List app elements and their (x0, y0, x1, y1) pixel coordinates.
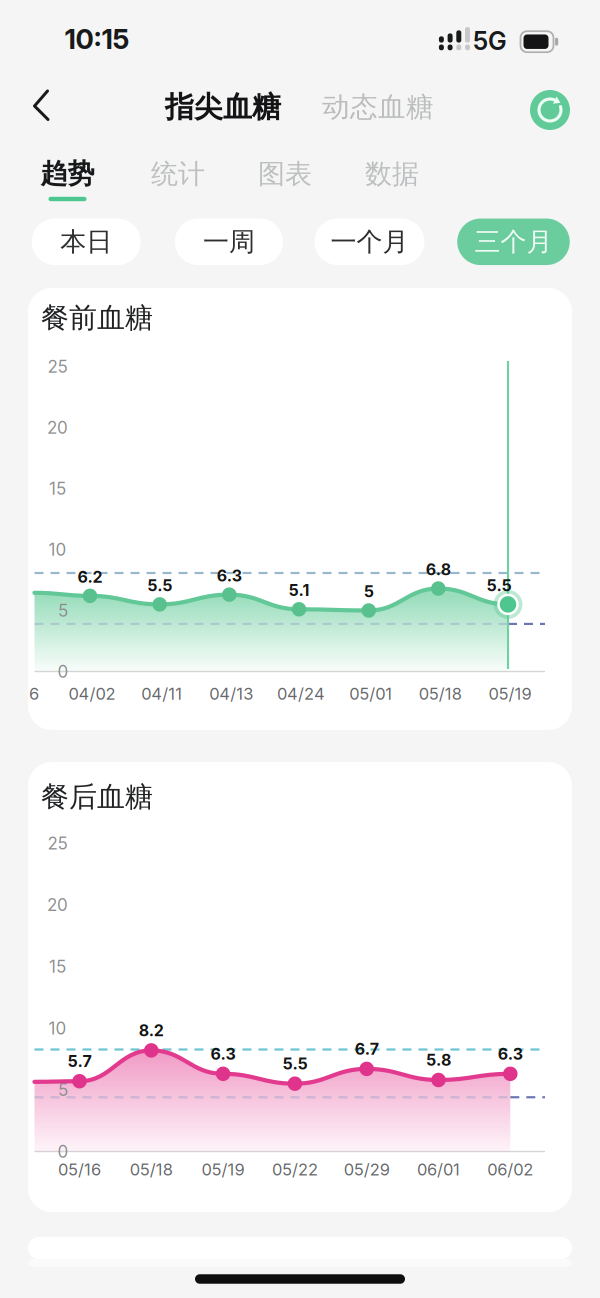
staticText: 0 (57, 661, 68, 682)
button[interactable]: 本日 (32, 219, 141, 265)
staticText: 本日 (60, 225, 112, 258)
staticText: 10:15 (64, 22, 129, 56)
staticText: 15 (49, 478, 66, 499)
button[interactable]: 趋势 (40, 157, 94, 201)
staticText: 餐前血糖 (41, 300, 153, 336)
staticText: 5 (58, 600, 68, 621)
staticText: 25 (47, 356, 67, 377)
staticText: 0 (57, 1141, 68, 1162)
staticText: 数据 (365, 157, 419, 191)
staticText: 25 (47, 833, 67, 854)
staticText: 05/19 (202, 1159, 245, 1179)
staticText: 餐后血糖 (41, 779, 153, 815)
staticText: 一周 (203, 225, 255, 258)
staticText: 06/02 (487, 1159, 533, 1179)
staticText: 5.5 (147, 576, 172, 595)
staticText: 04/11 (141, 684, 182, 704)
staticText: 05/29 (344, 1159, 390, 1179)
staticText: 6 (29, 684, 39, 704)
staticText: 05/18 (419, 684, 462, 704)
button[interactable]: 图表 (249, 152, 321, 196)
staticText: 05/16 (58, 1159, 101, 1179)
staticText: 三个月 (474, 225, 552, 258)
staticText: 06/01 (417, 1159, 460, 1179)
staticText: 图表 (258, 157, 312, 191)
staticText: 6.2 (77, 567, 102, 587)
button[interactable]: Back (19, 83, 63, 127)
staticText: 8.2 (139, 1021, 164, 1040)
staticText: 5.7 (67, 1051, 91, 1071)
staticText: 5 (364, 582, 374, 601)
staticText: 10 (48, 1018, 66, 1038)
staticText: 动态血糖 (322, 90, 434, 124)
staticText: 6.7 (355, 1039, 379, 1059)
button[interactable]: Refresh (530, 90, 570, 130)
staticText: 6.8 (426, 560, 451, 579)
staticText: 04/24 (277, 684, 325, 704)
button[interactable]: 一个月 (314, 219, 424, 265)
staticText: 05/01 (349, 684, 392, 704)
staticText: 05/22 (272, 1159, 318, 1179)
button[interactable]: 一周 (175, 219, 283, 265)
staticText: 5.5 (486, 576, 511, 595)
staticText: 5 (58, 1080, 68, 1100)
staticText: 6.3 (211, 1044, 236, 1063)
button[interactable]: 数据 (356, 152, 428, 196)
staticText: 15 (49, 956, 66, 977)
staticText: 一个月 (330, 225, 408, 258)
staticText: 20 (47, 895, 68, 915)
staticText: 5G (473, 26, 507, 56)
staticText: 5.5 (282, 1054, 307, 1073)
staticText: 6.3 (217, 566, 242, 585)
staticText: 6.3 (498, 1044, 523, 1063)
staticText: 10 (48, 539, 66, 560)
staticText: 05/18 (130, 1159, 173, 1179)
button[interactable]: 三个月 (457, 219, 570, 265)
staticText: 04/02 (68, 684, 115, 704)
staticText: 统计 (151, 157, 205, 191)
staticText: 20 (47, 417, 68, 438)
staticText: 趋势 (40, 157, 94, 191)
staticText: 04/13 (209, 684, 253, 704)
staticText: 05/19 (488, 684, 531, 704)
staticText: 5.8 (426, 1050, 451, 1070)
button[interactable]: 动态血糖 (316, 85, 440, 129)
button[interactable]: 统计 (142, 152, 214, 196)
staticText: 指尖血糖 (165, 89, 281, 125)
staticText: 5.1 (288, 581, 309, 600)
